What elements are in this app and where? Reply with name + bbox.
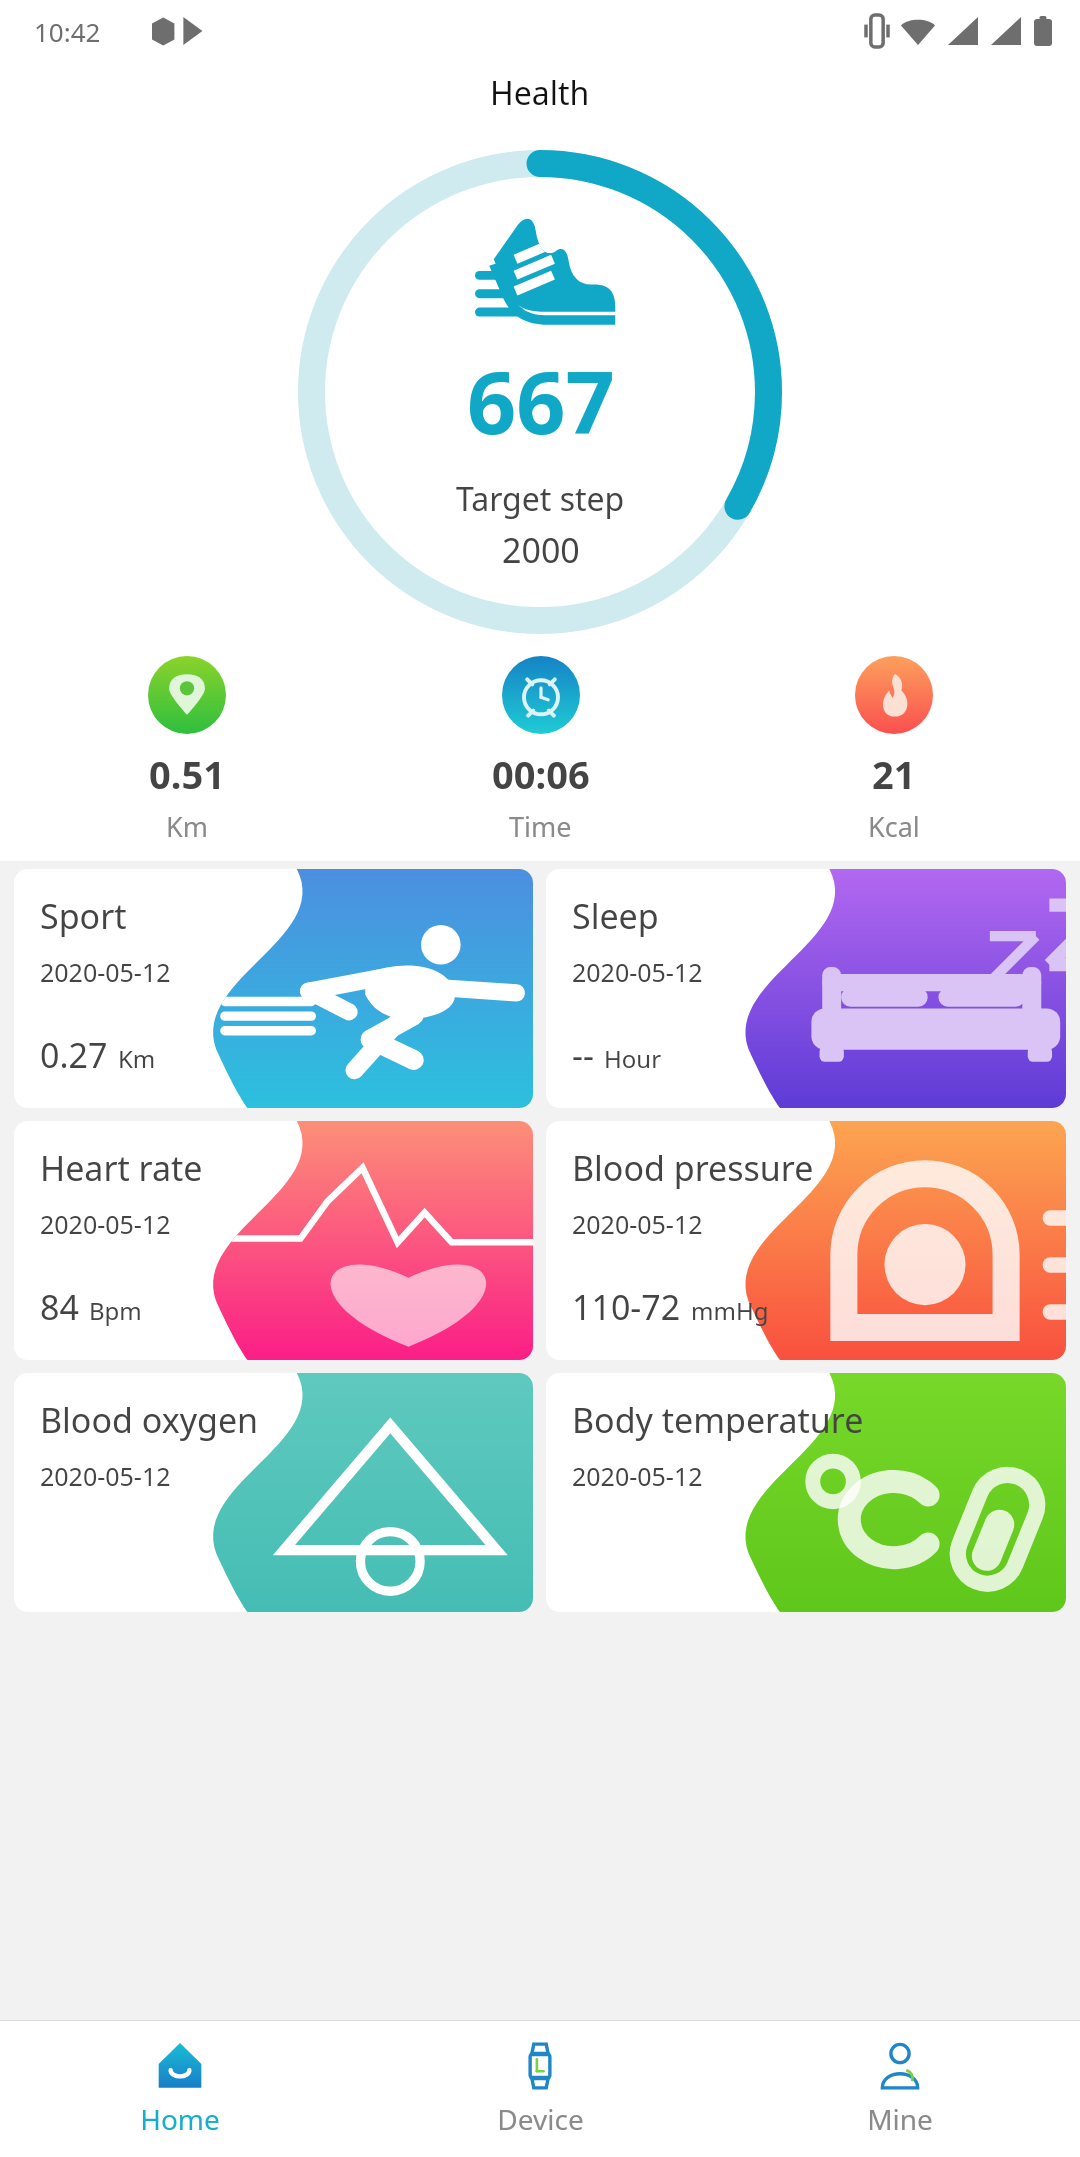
staticText: 84 bbox=[40, 1284, 79, 1330]
staticText: 10:42 bbox=[34, 14, 101, 49]
button[interactable]: Heart rate bbox=[14, 1121, 533, 1360]
staticText: Kcal bbox=[868, 808, 920, 845]
staticText: 2020-05-12 bbox=[40, 955, 171, 989]
staticText: 21 bbox=[872, 748, 916, 800]
staticText: 2020-05-12 bbox=[40, 1459, 171, 1493]
staticText: Device bbox=[497, 2100, 584, 2138]
staticText: Target step bbox=[456, 477, 625, 521]
staticText: Health bbox=[490, 71, 590, 115]
staticText: 2020-05-12 bbox=[572, 1207, 703, 1241]
staticText: Home bbox=[140, 2100, 220, 2138]
button[interactable]: Sleep bbox=[546, 869, 1066, 1108]
button[interactable]: Body temperature bbox=[546, 1373, 1066, 1612]
staticText: Sport bbox=[40, 893, 127, 939]
staticText: 110-72 bbox=[572, 1284, 681, 1330]
staticText: 0.51 bbox=[149, 748, 225, 800]
staticText: Blood oxygen bbox=[40, 1397, 259, 1443]
staticText: 00:06 bbox=[492, 748, 590, 800]
button[interactable]: Calories bbox=[717, 656, 1070, 845]
staticText: 2020-05-12 bbox=[572, 955, 703, 989]
staticText: Km bbox=[166, 808, 208, 845]
staticText: Hour bbox=[604, 1042, 662, 1075]
staticText: Km bbox=[118, 1042, 156, 1075]
staticText: 0.27 bbox=[40, 1032, 108, 1078]
button[interactable]: Duration bbox=[364, 656, 717, 845]
staticText: Body temperature bbox=[572, 1397, 864, 1443]
staticText: 2020-05-12 bbox=[40, 1207, 171, 1241]
staticText: 2020-05-12 bbox=[572, 1459, 703, 1493]
staticText: Bpm bbox=[89, 1294, 142, 1327]
button[interactable]: Mine bbox=[720, 2021, 1080, 2157]
button[interactable]: Blood oxygen bbox=[14, 1373, 533, 1612]
staticText: Heart rate bbox=[40, 1145, 203, 1191]
staticText: Sleep bbox=[572, 893, 659, 939]
staticText: 2000 bbox=[502, 527, 580, 573]
staticText: 667 bbox=[467, 342, 615, 459]
button[interactable]: Home bbox=[0, 2021, 360, 2157]
staticText: mmHg bbox=[691, 1294, 769, 1327]
button[interactable]: Device bbox=[360, 2021, 720, 2157]
button[interactable]: Distance bbox=[10, 656, 364, 845]
staticText: Blood pressure bbox=[572, 1145, 814, 1191]
staticText: Time bbox=[509, 808, 572, 845]
button[interactable]: Blood pressure bbox=[546, 1121, 1066, 1360]
staticText: -- bbox=[572, 1032, 594, 1078]
button[interactable]: Sport bbox=[14, 869, 533, 1108]
staticText: Mine bbox=[867, 2100, 933, 2138]
